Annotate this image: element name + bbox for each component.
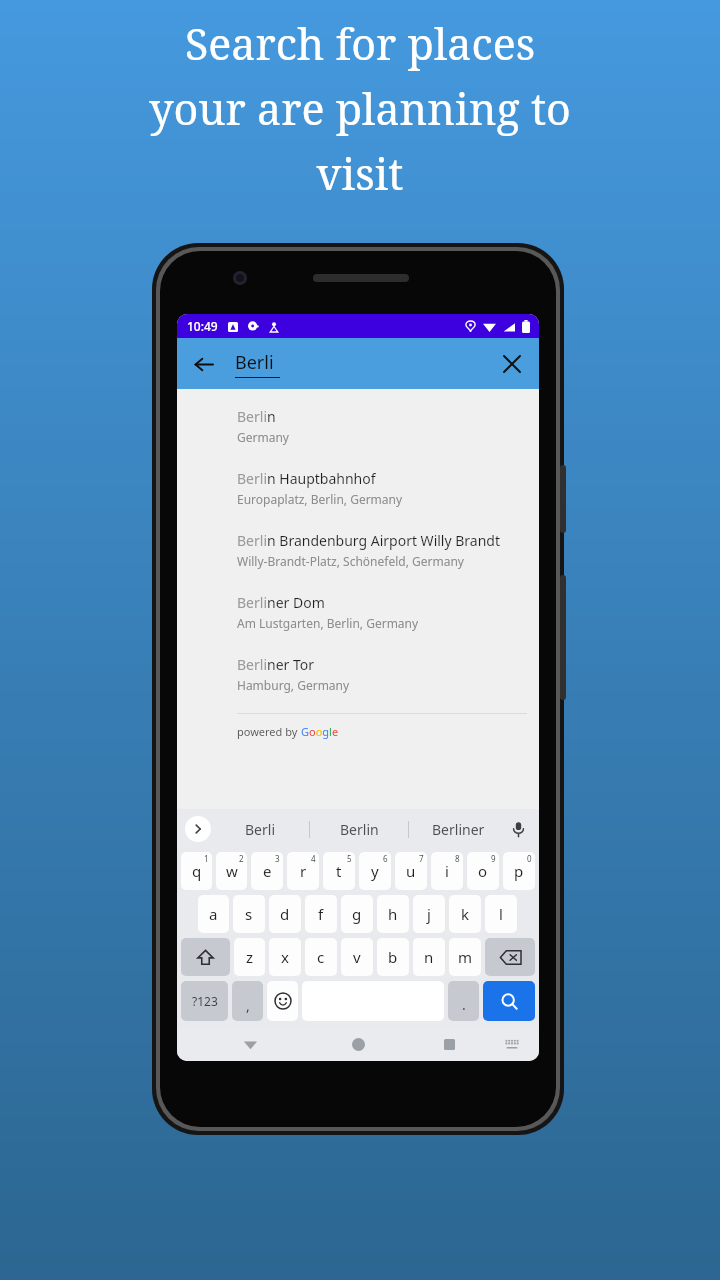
staticText: Berlin bbox=[237, 407, 276, 426]
staticText: Willy-Brandt-Platz, Schönefeld, Germany bbox=[237, 553, 464, 569]
button[interactable]: Berlin Brandenburg Airport Willy Brandt bbox=[177, 527, 539, 573]
button[interactable]: Berli bbox=[211, 809, 309, 849]
staticText: Berlin Hauptbahnhof bbox=[237, 469, 376, 488]
button[interactable]: w bbox=[216, 852, 247, 890]
button[interactable]: f bbox=[305, 895, 337, 933]
staticText: Berli bbox=[245, 820, 276, 839]
staticText: o bbox=[478, 861, 488, 881]
button[interactable]: Berliner Dom bbox=[177, 589, 539, 635]
staticText: e bbox=[263, 861, 272, 881]
button[interactable]: Berlin bbox=[310, 809, 408, 849]
staticText: y bbox=[371, 861, 379, 881]
button[interactable]: b bbox=[377, 938, 409, 976]
staticText: , bbox=[246, 996, 250, 1015]
button[interactable]: Shift bbox=[181, 938, 230, 976]
button[interactable]: u bbox=[395, 852, 427, 890]
button[interactable]: c bbox=[305, 938, 337, 976]
button[interactable]: k bbox=[449, 895, 481, 933]
staticText: Berlin Brandenburg Airport Willy Brandt bbox=[237, 531, 501, 550]
button[interactable]: Berli bbox=[235, 338, 481, 389]
button[interactable]: Back bbox=[235, 1029, 265, 1059]
button[interactable]: More suggestions bbox=[185, 816, 211, 842]
button[interactable]: e bbox=[251, 852, 283, 890]
staticText: 3 bbox=[275, 853, 280, 864]
button[interactable]: d bbox=[269, 895, 301, 933]
button[interactable]: p bbox=[503, 852, 535, 890]
button[interactable]: l bbox=[485, 895, 517, 933]
staticText: h bbox=[388, 904, 398, 924]
button[interactable]: i bbox=[431, 852, 463, 890]
button[interactable]: . bbox=[448, 981, 479, 1021]
staticText: powered by bbox=[237, 724, 301, 739]
staticText: 10:49 bbox=[187, 318, 218, 334]
button[interactable]: g bbox=[341, 895, 373, 933]
button[interactable]: z bbox=[234, 938, 265, 976]
button[interactable]: Clear bbox=[494, 346, 530, 382]
staticText: i bbox=[445, 861, 449, 881]
staticText: 0 bbox=[527, 853, 532, 864]
staticText: 6 bbox=[383, 853, 388, 864]
staticText: . bbox=[462, 995, 466, 1014]
staticText: 1 bbox=[204, 853, 209, 864]
staticText: Google bbox=[301, 724, 339, 739]
button[interactable]: n bbox=[413, 938, 445, 976]
staticText: 2 bbox=[239, 853, 244, 864]
staticText: j bbox=[427, 904, 431, 924]
button[interactable]: m bbox=[449, 938, 481, 976]
staticText: l bbox=[499, 904, 503, 924]
button[interactable]: t bbox=[323, 852, 355, 890]
staticText: c bbox=[317, 947, 325, 967]
button[interactable]: Hide keyboard bbox=[499, 1031, 525, 1057]
button[interactable]: x bbox=[269, 938, 301, 976]
button[interactable]: Recent apps bbox=[434, 1029, 464, 1059]
staticText: 9 bbox=[491, 853, 496, 864]
staticText: k bbox=[461, 904, 470, 924]
staticText: u bbox=[406, 861, 416, 881]
staticText: s bbox=[245, 904, 253, 924]
button[interactable]: q bbox=[181, 852, 212, 890]
button[interactable]: y bbox=[359, 852, 391, 890]
staticText: q bbox=[192, 861, 202, 881]
button[interactable]: ?123 bbox=[181, 981, 228, 1021]
button[interactable]: Home bbox=[343, 1029, 373, 1059]
button[interactable]: Berlin Hauptbahnhof bbox=[177, 465, 539, 511]
staticText: g bbox=[352, 904, 362, 924]
staticText: Berliner bbox=[432, 820, 485, 839]
staticText: r bbox=[300, 861, 307, 881]
staticText: Berliner Dom bbox=[237, 593, 325, 612]
button[interactable]: Search bbox=[483, 981, 535, 1021]
button[interactable]: a bbox=[198, 895, 229, 933]
staticText: Berli bbox=[235, 350, 274, 375]
staticText: f bbox=[318, 904, 324, 924]
staticText: x bbox=[281, 947, 289, 967]
button[interactable]: , bbox=[232, 981, 263, 1021]
button[interactable]: r bbox=[287, 852, 319, 890]
staticText: Berlin bbox=[340, 820, 379, 839]
button[interactable]: j bbox=[413, 895, 445, 933]
staticText: 8 bbox=[455, 853, 460, 864]
button[interactable]: h bbox=[377, 895, 409, 933]
button[interactable]: Berliner bbox=[409, 809, 507, 849]
button[interactable]: Emoji bbox=[267, 981, 298, 1021]
button[interactable]: Berliner Tor bbox=[177, 651, 539, 697]
staticText: m bbox=[458, 947, 473, 967]
button[interactable]: Voice input bbox=[504, 815, 532, 843]
button[interactable]: Backspace bbox=[485, 938, 535, 976]
button[interactable]: Berlin bbox=[177, 403, 539, 449]
staticText: a bbox=[209, 904, 218, 924]
staticText: v bbox=[353, 947, 361, 967]
staticText: d bbox=[280, 904, 290, 924]
button[interactable]: v bbox=[341, 938, 373, 976]
button[interactable]: s bbox=[233, 895, 265, 933]
staticText: ?123 bbox=[192, 993, 218, 1009]
staticText: b bbox=[388, 947, 398, 967]
staticText: 4 bbox=[311, 853, 316, 864]
button[interactable]: o bbox=[467, 852, 499, 890]
staticText: n bbox=[424, 947, 434, 967]
staticText: Berliner Tor bbox=[237, 655, 315, 674]
button[interactable]: Back bbox=[185, 346, 221, 382]
staticText: w bbox=[226, 861, 238, 881]
staticText: t bbox=[336, 861, 342, 881]
staticText: Europaplatz, Berlin, Germany bbox=[237, 491, 403, 507]
